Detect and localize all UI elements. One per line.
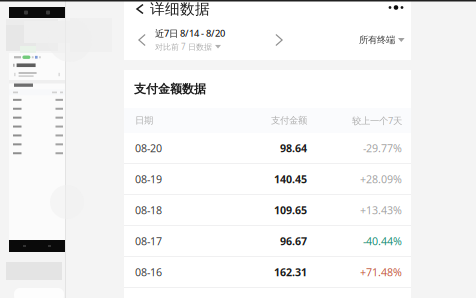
staticText: 日期 [135, 115, 153, 126]
staticText: -29.77% [363, 141, 402, 155]
staticText: 109.65 [274, 203, 307, 217]
button[interactable]: 08-19 [124, 164, 411, 195]
staticText: 所有终端 [359, 34, 395, 46]
button[interactable]: Next period [268, 27, 290, 53]
staticText: 162.31 [274, 265, 307, 279]
staticText: 对比前 7 日数据 [155, 41, 212, 52]
staticText: +71.48% [360, 265, 402, 279]
staticText: +28.09% [360, 172, 402, 186]
button[interactable]: 对比前 7 日数据 [155, 41, 221, 52]
staticText: 08-19 [135, 172, 162, 186]
button[interactable]: 08-17 [124, 226, 411, 257]
staticText: 较上一个7天 [352, 114, 402, 127]
button[interactable]: 08-18 [124, 195, 411, 226]
button[interactable]: Back [124, 0, 218, 18]
staticText: 支付金额 [271, 115, 307, 126]
staticText: 08-20 [135, 141, 162, 155]
staticText: 08-17 [135, 234, 162, 248]
button[interactable]: 所有终端 [359, 29, 405, 51]
staticText: 08-18 [135, 203, 162, 217]
staticText: -40.44% [363, 234, 402, 248]
staticText: 98.64 [280, 141, 307, 155]
button[interactable]: More options [383, 1, 409, 14]
staticText: 08-16 [135, 265, 162, 279]
staticText: 140.45 [274, 172, 307, 186]
staticText: 96.67 [280, 234, 307, 248]
staticText: 支付金额数据 [134, 82, 206, 96]
staticText: 近7日 8/14 - 8/20 [155, 27, 225, 39]
staticText: 详细数据 [150, 0, 210, 18]
staticText: +13.43% [360, 203, 402, 217]
button[interactable]: Previous period [131, 27, 153, 53]
button[interactable]: 08-20 [124, 133, 411, 164]
button[interactable]: 08-16 [124, 257, 411, 288]
